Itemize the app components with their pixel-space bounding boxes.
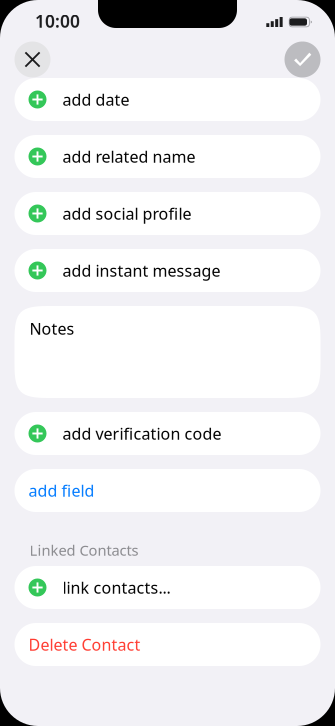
button[interactable]: add instant message [14, 249, 320, 292]
button[interactable]: Cancel [14, 41, 50, 77]
staticText: add date [62, 89, 129, 110]
staticText: add instant message [62, 260, 220, 281]
staticText: link contacts... [62, 577, 170, 598]
button[interactable]: add verification code [14, 412, 320, 455]
staticText: add related name [62, 146, 195, 167]
staticText: 10:00 [35, 9, 80, 32]
staticText: Linked Contacts [29, 540, 138, 560]
staticText: add social profile [62, 203, 191, 224]
button[interactable]: add field [14, 469, 320, 512]
staticText: Delete Contact [28, 634, 140, 655]
button[interactable]: add related name [14, 135, 320, 178]
staticText: add verification code [62, 423, 221, 444]
button[interactable]: link contacts... [14, 566, 320, 609]
button[interactable]: Done [284, 41, 320, 77]
button[interactable]: Delete Contact [14, 623, 320, 666]
button[interactable]: add date [14, 78, 320, 121]
staticText: Notes [29, 318, 74, 339]
button[interactable]: add social profile [14, 192, 320, 235]
staticText: add field [28, 480, 94, 501]
